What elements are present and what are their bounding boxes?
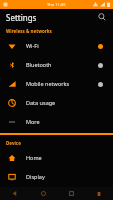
button[interactable]: Back — [0, 187, 29, 200]
button[interactable]: Toggle on — [93, 40, 107, 52]
staticText: Bluetooth — [26, 61, 93, 68]
button[interactable]: Home — [29, 187, 57, 200]
button[interactable]: Recent apps — [57, 187, 85, 200]
staticText: Device — [6, 140, 21, 146]
button[interactable]: Wi-Fi — [0, 36, 113, 55]
staticText: Home — [26, 154, 107, 161]
staticText: Display — [26, 173, 107, 180]
button[interactable]: Menu — [85, 187, 113, 200]
staticText: Thu 11:45 — [47, 2, 66, 7]
button[interactable]: Home — [0, 148, 113, 167]
staticText: Mobile networks — [26, 80, 93, 87]
button[interactable]: Data usage — [0, 93, 113, 112]
staticText: Wireless & networks — [6, 28, 52, 34]
button[interactable]: Toggle off — [93, 59, 107, 71]
button[interactable]: Search — [95, 10, 109, 24]
staticText: Wi-Fi — [26, 42, 93, 49]
button[interactable]: Bluetooth — [0, 55, 113, 74]
staticText: More — [26, 118, 107, 125]
button[interactable]: Display — [0, 167, 113, 186]
button[interactable]: Toggle off — [93, 78, 107, 90]
staticText: Settings — [6, 12, 37, 23]
staticText: Data usage — [26, 99, 107, 106]
button[interactable]: Mobile networks — [0, 74, 113, 93]
button[interactable]: More — [0, 112, 113, 131]
